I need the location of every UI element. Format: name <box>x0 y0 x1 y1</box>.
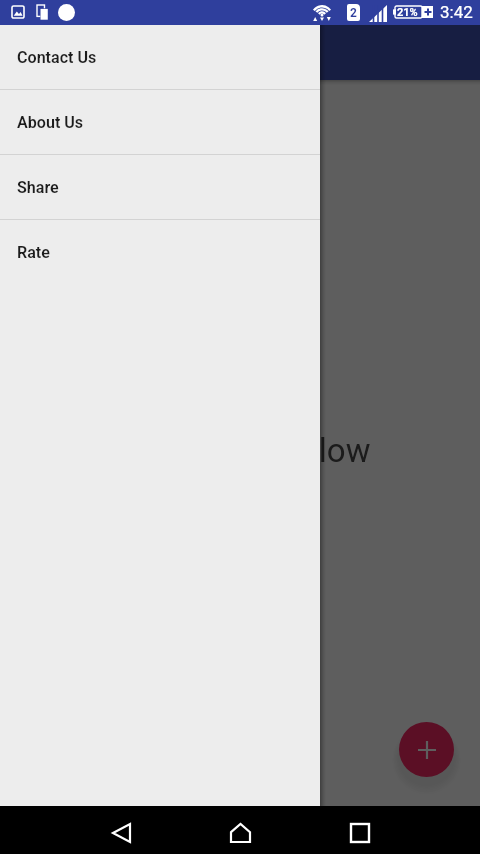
staticText: Contact Us <box>17 48 97 67</box>
staticText: Hello Follow <box>190 431 371 470</box>
button[interactable]: Contact Us <box>0 25 320 90</box>
button[interactable]: Add <box>399 722 454 777</box>
button[interactable]: Back <box>97 809 145 854</box>
button[interactable]: Share <box>0 155 320 220</box>
staticText: 21% <box>397 6 418 19</box>
button[interactable]: Home <box>216 809 264 854</box>
staticText: 2 <box>350 6 357 20</box>
staticText: 3:42 <box>440 2 473 22</box>
staticText: Share <box>17 178 59 197</box>
button[interactable]: Recent apps <box>336 809 384 854</box>
button[interactable]: Rate <box>0 220 320 285</box>
staticText: About Us <box>17 113 84 132</box>
button[interactable]: About Us <box>0 90 320 155</box>
staticText: Rate <box>17 243 50 262</box>
